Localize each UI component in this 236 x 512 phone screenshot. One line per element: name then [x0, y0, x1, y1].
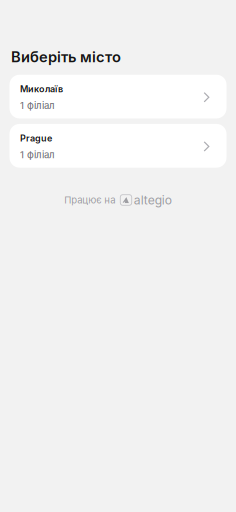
- staticText: Миколаїв: [20, 83, 63, 94]
- button[interactable]: Миколаїв: [9, 75, 226, 118]
- staticText: Працює на: [64, 194, 115, 206]
- staticText: 1 філіал: [20, 100, 55, 111]
- button[interactable]: Prague: [9, 124, 226, 168]
- staticText: Виберіть місто: [11, 48, 121, 66]
- staticText: 1 філіал: [20, 149, 55, 161]
- staticText: altegio: [134, 193, 172, 207]
- staticText: Prague: [20, 133, 52, 144]
- button[interactable]: Працює на: [0, 193, 236, 207]
